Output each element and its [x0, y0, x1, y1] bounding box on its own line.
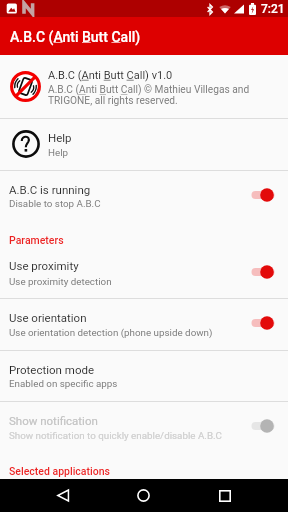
staticText: Show notification to quickly enable/disa… — [9, 430, 222, 441]
staticText: Enabled on specific apps — [9, 378, 118, 389]
button[interactable]: Toggle — [247, 183, 281, 207]
button[interactable] — [0, 351, 288, 401]
staticText: Use proximity — [9, 259, 79, 272]
staticText: A.B.C (Anti Butt Call) — [10, 29, 141, 45]
button[interactable] — [0, 299, 288, 350]
button[interactable] — [0, 119, 288, 170]
staticText: Disable to stop A.B.C — [9, 198, 101, 209]
button[interactable]: Recent apps — [200, 479, 249, 512]
staticText: Use orientation detection (phone upside … — [9, 327, 213, 338]
staticText: Help — [48, 147, 69, 158]
staticText: Show notification — [9, 414, 98, 427]
button[interactable] — [0, 247, 288, 298]
button[interactable]: Toggle — [247, 260, 281, 284]
button[interactable] — [0, 55, 288, 118]
button[interactable]: Home — [119, 479, 168, 512]
button[interactable]: Toggle — [247, 311, 281, 335]
button[interactable]: Toggle — [247, 414, 281, 438]
staticText: TRIGONE, all rights reserved. — [48, 95, 178, 107]
button[interactable] — [0, 171, 288, 223]
staticText: Use orientation — [9, 311, 87, 324]
staticText: Use proximity detection — [9, 276, 112, 287]
staticText: A.B.C (Anti Butt Call) v1.0 — [48, 69, 173, 82]
staticText: A.B.C (Anti Butt Call) © Mathieu Villega… — [48, 84, 250, 96]
button[interactable] — [0, 402, 288, 453]
button[interactable]: Back — [39, 479, 88, 512]
staticText: 7:21 — [261, 2, 285, 16]
staticText: Parameters — [9, 234, 64, 246]
staticText: Help — [48, 131, 72, 144]
staticText: Selected applications — [9, 465, 110, 477]
staticText: A.B.C is running — [9, 183, 91, 196]
staticText: Protection mode — [9, 363, 95, 376]
